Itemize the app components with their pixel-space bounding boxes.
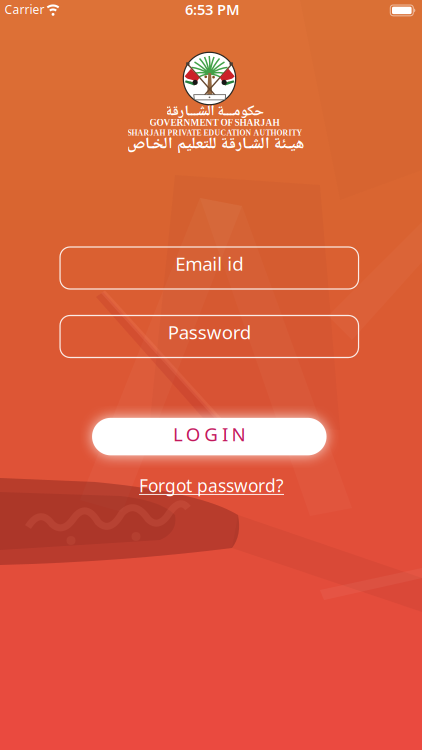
staticText: Forgot password? bbox=[139, 474, 284, 497]
staticText: هيـئة الشـارقة للتعليم الخـاص bbox=[126, 131, 303, 158]
staticText: Carrier bbox=[4, 1, 44, 17]
staticText: LOGIN bbox=[173, 422, 245, 446]
staticText: 6:53 PM bbox=[185, 0, 240, 19]
staticText: Email id bbox=[175, 251, 243, 276]
button[interactable]: Forgot password? bbox=[139, 474, 284, 497]
button[interactable]: Email id bbox=[60, 247, 359, 289]
staticText: حكومـــة الشـــارقة bbox=[165, 99, 264, 125]
staticText: Password bbox=[168, 320, 251, 344]
button[interactable]: LOGIN bbox=[92, 418, 327, 455]
staticText: SHARJAH PRIVATE EDUCATION AUTHORITY bbox=[127, 128, 302, 137]
button[interactable]: Password bbox=[60, 315, 359, 357]
staticText: GOVERNMENT OF SHARJAH bbox=[149, 117, 279, 128]
